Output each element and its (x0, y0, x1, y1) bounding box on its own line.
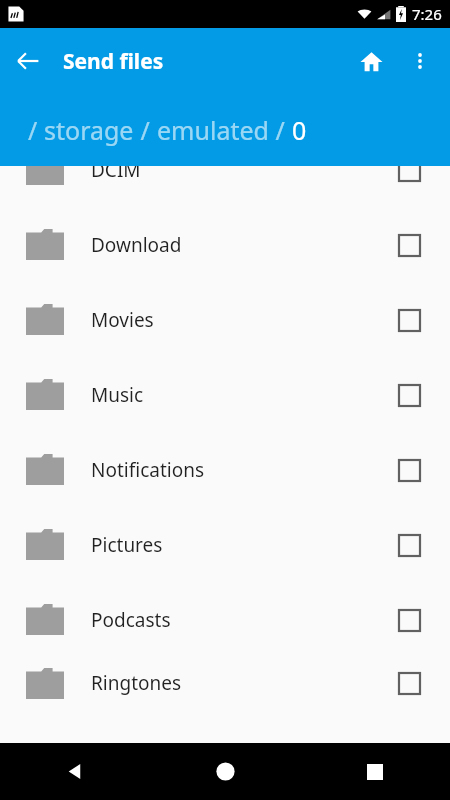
button[interactable]: Ringtones (0, 657, 450, 709)
button[interactable]: Recent apps (300, 743, 450, 800)
button[interactable]: Back (0, 743, 150, 800)
staticText: emulated (157, 113, 269, 147)
button[interactable]: 0 (292, 113, 307, 147)
staticText: Ringtones (91, 670, 182, 696)
button[interactable]: Pictures (0, 507, 450, 582)
staticText: / (134, 113, 157, 147)
button[interactable]: Back (0, 33, 56, 89)
button[interactable]: Download (0, 207, 450, 282)
button[interactable]: emulated (157, 113, 269, 147)
staticText: DCIM (91, 166, 141, 183)
staticText: Music (91, 382, 144, 408)
staticText: / (269, 113, 292, 147)
button[interactable]: Music (0, 357, 450, 432)
button[interactable]: Movies (0, 282, 450, 357)
button[interactable]: Home (150, 743, 300, 800)
button[interactable]: Select Music (383, 369, 435, 421)
staticText: Notifications (91, 457, 205, 483)
staticText: Movies (91, 307, 154, 333)
button[interactable]: Select Ringtones (383, 657, 435, 709)
staticText: Podcasts (91, 607, 171, 633)
button[interactable]: Select Download (383, 219, 435, 271)
button[interactable]: Podcasts (0, 582, 450, 657)
button[interactable]: Home (346, 36, 396, 86)
button[interactable]: Notifications (0, 432, 450, 507)
staticText: 0 (292, 113, 307, 147)
button[interactable]: Select Podcasts (383, 594, 435, 646)
staticText: 7:26 (412, 4, 442, 24)
staticText: Download (91, 232, 182, 258)
button[interactable]: DCIM (0, 166, 450, 207)
button[interactable]: Select Notifications (383, 444, 435, 496)
button[interactable]: Select Movies (383, 294, 435, 346)
button[interactable]: More options (396, 37, 444, 85)
button[interactable]: Select Pictures (383, 519, 435, 571)
button[interactable]: Select DCIM (383, 166, 435, 196)
staticText: / (28, 113, 44, 147)
button[interactable]: storage (44, 113, 134, 147)
staticText: Send files (63, 47, 164, 76)
staticText: storage (44, 113, 134, 147)
staticText: Pictures (91, 532, 163, 558)
